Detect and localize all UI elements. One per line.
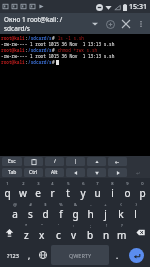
staticText: 2: [22, 181, 25, 186]
button[interactable]: More options: [134, 17, 148, 31]
button[interactable]: Enter: [129, 248, 144, 263]
staticText: Tab: [8, 169, 17, 176]
button[interactable]: key: [87, 168, 106, 177]
staticText: ;: [90, 223, 92, 228]
button[interactable]: ': [50, 222, 66, 243]
staticText: &: [74, 202, 77, 207]
staticText: e: [35, 186, 41, 200]
button[interactable]: New window: [102, 16, 118, 32]
button[interactable]: Alt: [45, 168, 64, 177]
staticText: %: [59, 202, 63, 207]
button[interactable]: Change language: [36, 245, 49, 265]
staticText: /: [54, 158, 56, 165]
staticText: o: [124, 186, 131, 200]
staticText: p: [139, 186, 146, 200]
button[interactable]: !: [98, 222, 114, 243]
staticText: +: [104, 202, 107, 207]
staticText: /sdcard/s: [28, 35, 52, 41]
staticText: $: [44, 202, 47, 207]
staticText: #: [52, 59, 55, 65]
staticText: #: [52, 47, 55, 53]
button[interactable]: Tab: [2, 168, 22, 177]
button[interactable]: #: [23, 201, 38, 222]
staticText: ": [41, 223, 43, 228]
button[interactable]: /: [45, 157, 64, 166]
staticText: ↵: [136, 170, 141, 176]
staticText: 1: [6, 181, 9, 186]
button[interactable]: $: [38, 201, 53, 222]
staticText: ): [135, 202, 137, 207]
staticText: :: [25, 59, 28, 65]
button[interactable]: ?123: [2, 245, 23, 265]
staticText: Alt: [51, 169, 58, 176]
button[interactable]: %: [53, 201, 68, 222]
button[interactable]: Choose window: [88, 17, 102, 31]
staticText: 5: [67, 181, 70, 186]
button[interactable]: 6: [75, 180, 90, 201]
button[interactable]: ,: [23, 245, 36, 265]
staticText: y: [80, 186, 86, 200]
button[interactable]: 1: [0, 180, 15, 201]
staticText: q: [4, 186, 11, 200]
staticText: #: [29, 202, 32, 207]
button[interactable]: Close window: [118, 16, 134, 32]
button[interactable]: *: [19, 222, 34, 243]
staticText: a: [12, 207, 18, 221]
staticText: chmod +rwx s.sh: [55, 47, 98, 53]
staticText: ?: [121, 223, 123, 228]
button[interactable]: Enter: [129, 168, 148, 177]
button[interactable]: Shift: [0, 222, 19, 243]
button[interactable]: 8: [105, 180, 120, 201]
button[interactable]: &: [68, 201, 83, 222]
button[interactable]: ?: [114, 222, 130, 243]
button[interactable]: 0: [135, 180, 150, 201]
staticText: Ctrl: [29, 169, 38, 176]
button[interactable]: @: [7, 201, 23, 222]
button[interactable]: 5: [60, 180, 75, 201]
button[interactable]: (: [113, 201, 128, 222]
staticText: :: [25, 35, 28, 41]
button[interactable]: 3: [30, 180, 45, 201]
button[interactable]: Backspace: [130, 222, 150, 243]
staticText: ?123: [7, 252, 19, 259]
button[interactable]: 7: [90, 180, 105, 201]
button[interactable]: .: [111, 245, 124, 265]
staticText: !: [106, 223, 108, 228]
staticText: /sdcard/s: [28, 47, 52, 53]
button[interactable]: :: [66, 222, 82, 243]
staticText: r: [50, 186, 55, 200]
button[interactable]: |: [66, 157, 85, 166]
button[interactable]: +: [98, 201, 113, 222]
staticText: 3: [37, 181, 40, 186]
staticText: @: [13, 202, 17, 207]
staticText: QWERTY: [69, 252, 92, 259]
staticText: h: [87, 207, 94, 221]
button[interactable]: QWERTY: [51, 245, 109, 265]
button[interactable]: Ctrl: [24, 168, 43, 177]
staticText: w: [19, 186, 27, 200]
staticText: |: [74, 158, 77, 165]
staticText: u: [94, 186, 101, 200]
button[interactable]: key: [66, 168, 85, 177]
staticText: -: [90, 202, 92, 207]
button[interactable]: key: [87, 157, 106, 166]
staticText: -rw-rw---- 1 root 1015 36 Nov 1 13:13 s.…: [1, 53, 115, 59]
button[interactable]: 4: [45, 180, 60, 201]
button[interactable]: key: [108, 168, 127, 177]
staticText: l: [134, 207, 137, 221]
staticText: b: [87, 228, 94, 242]
button[interactable]: key: [24, 157, 43, 166]
staticText: v: [71, 228, 77, 242]
staticText: 9: [126, 181, 129, 186]
button[interactable]: Esc: [2, 157, 22, 166]
staticText: /sdcard/s: [28, 59, 52, 65]
staticText: 0: [141, 181, 144, 186]
button[interactable]: ": [34, 222, 50, 243]
staticText: z: [24, 228, 29, 242]
button[interactable]: ): [128, 201, 143, 222]
button[interactable]: ←: [108, 157, 127, 166]
button[interactable]: 2: [15, 180, 30, 201]
button[interactable]: 9: [120, 180, 135, 201]
button[interactable]: -: [83, 201, 98, 222]
button[interactable]: ;: [82, 222, 98, 243]
